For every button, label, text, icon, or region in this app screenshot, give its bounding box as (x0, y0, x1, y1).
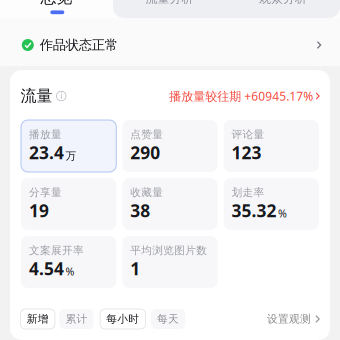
staticText: % (278, 206, 287, 220)
staticText: 作品状态正常 (40, 37, 118, 53)
button[interactable]: 流量分析 (113, 0, 226, 16)
staticText: % (65, 264, 74, 278)
button[interactable]: 新增 (20, 309, 55, 329)
staticText: 流量分析 (145, 0, 193, 6)
button[interactable]: 划走率 (224, 178, 319, 230)
button[interactable]: 播放量 (21, 120, 116, 172)
staticText: 万 (65, 149, 76, 162)
button[interactable]: 每天 (151, 309, 185, 329)
staticText: i (60, 91, 62, 101)
staticText: 每天 (157, 312, 179, 325)
staticText: 290 (130, 141, 160, 164)
staticText: 累计 (65, 312, 87, 325)
staticText: 流量 (20, 86, 52, 106)
staticText: 23.4 (29, 141, 64, 164)
staticText: 每小时 (106, 312, 139, 325)
staticText: 点赞量 (130, 128, 163, 141)
staticText: 设置观测 (267, 312, 311, 325)
button[interactable]: 收藏量 (122, 178, 218, 230)
staticText: 总览 (40, 0, 72, 7)
staticText: 19 (29, 199, 49, 222)
staticText: 收藏量 (130, 186, 163, 199)
staticText: 35.32 (232, 199, 277, 222)
staticText: 新增 (27, 312, 49, 325)
button[interactable]: 设置观测 (267, 312, 320, 325)
staticText: 38 (130, 199, 150, 222)
button[interactable]: 播放量较往期 +60945.17% (169, 88, 320, 104)
button[interactable]: 累计 (59, 309, 94, 329)
staticText: 播放量 (29, 128, 62, 141)
button[interactable]: 文案展开率 (21, 236, 116, 288)
button[interactable]: 总览 (0, 0, 113, 16)
staticText: 划走率 (232, 186, 265, 199)
staticText: 平均浏览图片数 (130, 244, 207, 257)
button[interactable]: 作品状态正常 (0, 28, 340, 62)
staticText: 观众分析 (259, 0, 307, 6)
staticText: 文案展开率 (29, 244, 84, 257)
staticText: 评论量 (232, 128, 265, 141)
staticText: 123 (232, 141, 262, 164)
staticText: 分享量 (29, 186, 62, 199)
button[interactable]: 每小时 (100, 309, 145, 329)
button[interactable]: 分享量 (21, 178, 116, 230)
staticText: 播放量较往期 +60945.17% (169, 88, 313, 104)
button[interactable]: 观众分析 (226, 0, 340, 16)
staticText: 4.54 (29, 257, 64, 280)
button[interactable]: 点赞量 (122, 120, 218, 172)
button[interactable]: 平均浏览图片数 (122, 236, 218, 288)
staticText: 1 (130, 257, 140, 280)
button[interactable]: 评论量 (224, 120, 319, 172)
